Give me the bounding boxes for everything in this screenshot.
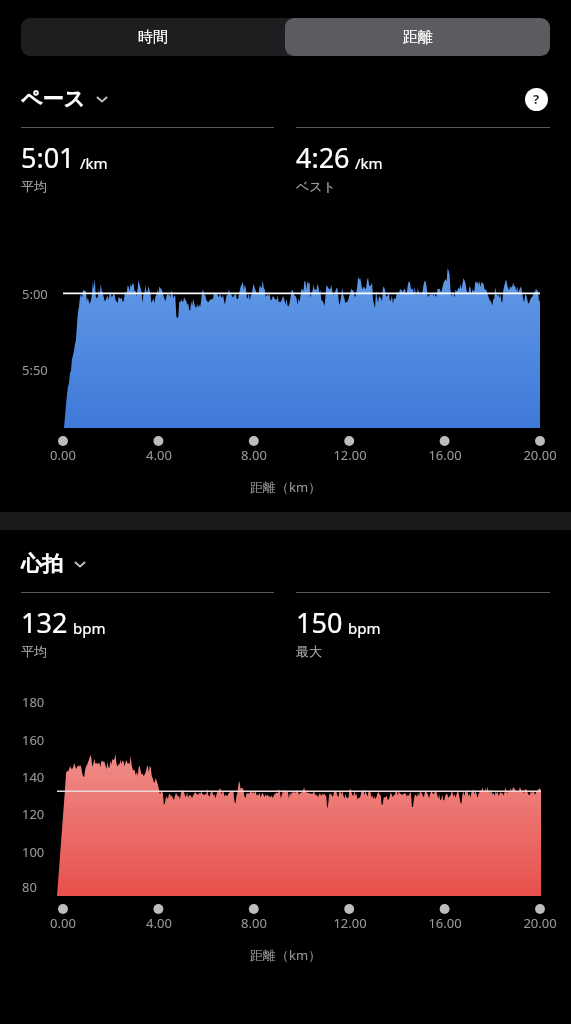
- staticText: 距離（km）: [250, 946, 322, 964]
- staticText: 12.00: [333, 446, 367, 464]
- staticText: 0.00: [50, 914, 76, 932]
- button[interactable]: Help: [522, 85, 550, 113]
- staticText: 距離: [403, 28, 433, 47]
- staticText: 距離（km）: [250, 478, 322, 496]
- staticText: 20.00: [523, 914, 557, 932]
- staticText: 5:01: [21, 139, 75, 176]
- staticText: ベスト: [296, 178, 336, 194]
- staticText: 8.00: [241, 446, 267, 464]
- button[interactable]: ペース: [21, 86, 110, 112]
- staticText: 5:50: [22, 361, 48, 379]
- button[interactable]: 時間: [21, 18, 285, 56]
- staticText: 0.00: [50, 446, 76, 464]
- staticText: 時間: [138, 28, 168, 47]
- button[interactable]: 4:26: [296, 127, 550, 194]
- button[interactable]: 距離: [285, 18, 550, 56]
- staticText: 平均: [21, 178, 47, 194]
- button[interactable]: 5:01: [21, 127, 274, 194]
- staticText: 100: [22, 843, 45, 861]
- staticText: 80: [22, 878, 37, 896]
- staticText: 160: [22, 731, 45, 749]
- staticText: 心拍: [21, 551, 63, 577]
- staticText: 16.00: [428, 914, 462, 932]
- staticText: 最大: [296, 643, 322, 659]
- staticText: 4.00: [146, 446, 172, 464]
- staticText: 4:26: [296, 139, 350, 176]
- staticText: ?: [533, 90, 540, 108]
- staticText: 平均: [21, 643, 47, 659]
- staticText: bpm: [73, 618, 106, 638]
- staticText: 120: [22, 805, 45, 823]
- staticText: 20.00: [523, 446, 557, 464]
- staticText: 180: [22, 693, 45, 711]
- staticText: 4.00: [146, 914, 172, 932]
- button[interactable]: 心拍: [21, 551, 88, 577]
- staticText: 150: [296, 604, 343, 641]
- staticText: bpm: [348, 618, 381, 638]
- staticText: 12.00: [333, 914, 367, 932]
- button[interactable]: 150: [296, 592, 550, 659]
- staticText: /km: [355, 153, 383, 173]
- staticText: 132: [21, 604, 68, 641]
- staticText: 5:00: [22, 285, 48, 303]
- staticText: ペース: [21, 86, 85, 112]
- staticText: 140: [22, 768, 45, 786]
- staticText: 16.00: [428, 446, 462, 464]
- staticText: /km: [80, 153, 108, 173]
- staticText: 8.00: [241, 914, 267, 932]
- button[interactable]: 132: [21, 592, 274, 659]
